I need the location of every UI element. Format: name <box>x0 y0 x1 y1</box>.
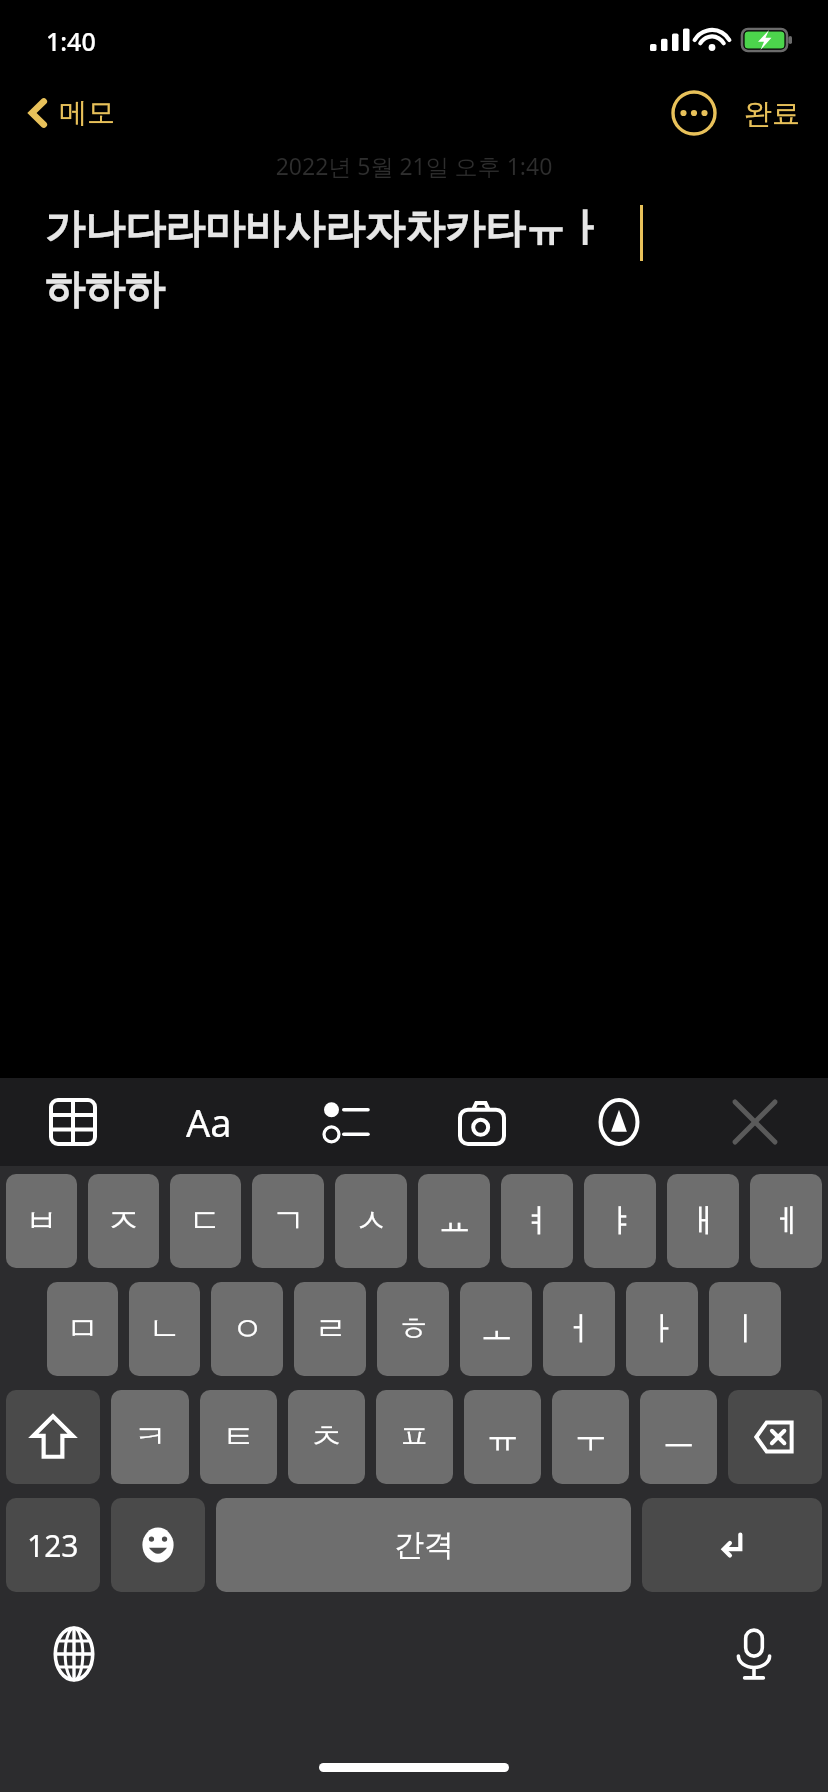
staticText: 123 <box>27 1525 79 1566</box>
button[interactable]: ㄹ <box>294 1282 366 1376</box>
staticText: ㅗ <box>480 1308 513 1350</box>
staticText: ㅌ <box>222 1416 255 1458</box>
button[interactable]: 메모 <box>20 89 123 136</box>
button[interactable]: 완료 <box>738 90 806 137</box>
staticText: 완료 <box>744 96 800 131</box>
staticText: ㅡ <box>662 1416 695 1458</box>
staticText: ㅏ <box>646 1308 679 1350</box>
staticText: 가나다라마바사라자차카타ㅠㅏ 하하하 <box>45 203 605 315</box>
button[interactable]: Checklist <box>315 1091 377 1153</box>
staticText: 1:40 <box>46 24 96 58</box>
button[interactable]: ㄴ <box>129 1282 200 1376</box>
button[interactable]: Close keyboard <box>724 1091 786 1153</box>
button[interactable]: ㅈ <box>88 1174 159 1268</box>
button[interactable]: More options <box>668 87 720 139</box>
button[interactable]: 간격 <box>216 1498 631 1592</box>
button[interactable]: Return <box>642 1498 822 1592</box>
staticText: ㅣ <box>729 1308 762 1350</box>
staticText: ㅑ <box>604 1200 637 1242</box>
button[interactable]: 123 <box>6 1498 100 1592</box>
button[interactable]: ㅐ <box>667 1174 739 1268</box>
button[interactable]: ㅊ <box>288 1390 365 1484</box>
button[interactable]: ㅍ <box>376 1390 453 1484</box>
staticText: ㅇ <box>231 1308 264 1350</box>
button[interactable]: ㅌ <box>200 1390 277 1484</box>
staticText: ㅅ <box>355 1200 388 1242</box>
button[interactable]: 2022년 5월 21일 오후 1:40 <box>0 150 828 315</box>
button[interactable]: Emoji <box>111 1498 205 1592</box>
button[interactable]: ㅁ <box>47 1282 118 1376</box>
staticText: ㅊ <box>310 1416 343 1458</box>
staticText: ㅁ <box>66 1308 99 1350</box>
staticText: ㅈ <box>107 1200 140 1242</box>
staticText: ㅍ <box>398 1416 431 1458</box>
button[interactable]: ㅏ <box>626 1282 698 1376</box>
button[interactable]: ㅂ <box>6 1174 77 1268</box>
button[interactable]: Shift <box>6 1390 100 1484</box>
button[interactable]: ㅋ <box>111 1390 189 1484</box>
button[interactable]: ㅡ <box>640 1390 717 1484</box>
staticText: 메모 <box>59 95 115 130</box>
button[interactable]: ㅓ <box>543 1282 615 1376</box>
staticText: ㅎ <box>397 1308 430 1350</box>
button[interactable]: Table <box>42 1091 104 1153</box>
staticText: ㅂ <box>25 1200 58 1242</box>
staticText: Aa <box>186 1096 232 1148</box>
button[interactable]: ㅅ <box>335 1174 407 1268</box>
button[interactable]: Camera <box>451 1091 513 1153</box>
button[interactable]: ㅣ <box>709 1282 781 1376</box>
button[interactable]: Markup <box>588 1091 650 1153</box>
button[interactable]: Change keyboard <box>42 1622 106 1686</box>
button[interactable]: ㄱ <box>252 1174 324 1268</box>
staticText: ㄷ <box>189 1200 222 1242</box>
staticText: 2022년 5월 21일 오후 1:40 <box>0 150 828 181</box>
button[interactable]: ㅎ <box>377 1282 449 1376</box>
button[interactable]: Backspace <box>728 1390 822 1484</box>
button[interactable]: ㄷ <box>170 1174 241 1268</box>
button[interactable]: ㅛ <box>418 1174 490 1268</box>
button[interactable]: ㅗ <box>460 1282 532 1376</box>
staticText: ㅠ <box>486 1416 519 1458</box>
staticText: ㅜ <box>574 1416 607 1458</box>
button[interactable]: Aa <box>178 1091 240 1153</box>
button[interactable]: Dictation <box>722 1622 786 1686</box>
staticText: ㅐ <box>687 1200 720 1242</box>
staticText: ㄱ <box>272 1200 305 1242</box>
staticText: ㅛ <box>438 1200 471 1242</box>
staticText: ㅋ <box>134 1416 167 1458</box>
button[interactable]: ㅠ <box>464 1390 541 1484</box>
button[interactable]: ㅑ <box>584 1174 656 1268</box>
button[interactable]: ㅕ <box>501 1174 573 1268</box>
staticText: ㄹ <box>314 1308 347 1350</box>
button[interactable]: ㅇ <box>211 1282 283 1376</box>
staticText: ㅔ <box>770 1200 803 1242</box>
button[interactable]: ㅔ <box>750 1174 822 1268</box>
staticText: ㄴ <box>148 1308 181 1350</box>
staticText: ㅕ <box>521 1200 554 1242</box>
button[interactable]: ㅜ <box>552 1390 629 1484</box>
staticText: 간격 <box>394 1526 454 1564</box>
staticText: ㅓ <box>563 1308 596 1350</box>
